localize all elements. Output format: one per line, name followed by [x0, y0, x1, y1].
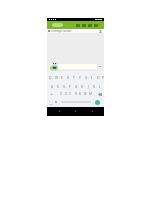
staticText: H — [81, 85, 84, 89]
staticText: J — [88, 85, 89, 89]
staticText: L — [99, 85, 101, 89]
staticText: D — [63, 85, 66, 89]
button[interactable]: Tab — [82, 24, 86, 27]
staticText: U — [85, 76, 88, 80]
staticText: S — [57, 85, 59, 89]
button[interactable]: Backspace — [97, 91, 103, 97]
button[interactable]: V — [73, 91, 78, 97]
button[interactable]: Tab — [76, 24, 80, 27]
staticText: X — [65, 92, 67, 96]
staticText: Y — [79, 76, 81, 80]
staticText: M — [89, 92, 92, 96]
button[interactable]: Title — [52, 23, 63, 27]
staticText: B — [79, 92, 82, 96]
button[interactable]: Shift — [48, 91, 54, 97]
button[interactable]: Recents — [88, 107, 97, 116]
button[interactable]: E — [59, 75, 65, 81]
button[interactable]: X — [63, 91, 68, 97]
button[interactable]: U — [83, 75, 89, 81]
staticText: F — [69, 85, 71, 89]
staticText: Z — [60, 92, 62, 96]
button[interactable]: Enter — [95, 100, 100, 105]
button[interactable]: D — [61, 84, 67, 90]
button[interactable]: F — [67, 84, 73, 90]
button[interactable]: Y — [77, 75, 83, 81]
staticText: W — [55, 76, 58, 80]
button[interactable]: M — [88, 91, 93, 97]
button[interactable]: O — [95, 75, 101, 81]
button[interactable]: W — [53, 75, 59, 81]
button[interactable]: I — [89, 75, 95, 81]
button[interactable]: Tab — [94, 24, 98, 27]
button[interactable]: Back — [55, 107, 64, 116]
button[interactable]: L — [97, 84, 103, 90]
button[interactable]: ?123 — [49, 99, 54, 105]
staticText: T — [73, 76, 75, 80]
staticText: R — [67, 76, 69, 80]
button[interactable]: K — [91, 84, 97, 90]
staticText: C — [69, 92, 72, 96]
button[interactable]: Tab — [88, 24, 92, 27]
button[interactable]: Q — [47, 75, 53, 81]
staticText: V — [75, 92, 77, 96]
button[interactable]: Home — [71, 107, 80, 116]
button[interactable]: Sticker — [50, 62, 59, 71]
staticText: O — [97, 76, 100, 80]
button[interactable]: N — [83, 91, 88, 97]
staticText: A — [51, 85, 54, 89]
staticText: ?123 — [49, 99, 54, 105]
staticText: message contact — [51, 29, 72, 33]
staticText: I — [91, 76, 93, 80]
button[interactable]: Z — [58, 91, 63, 97]
staticText: G — [75, 85, 78, 89]
staticText: N — [84, 92, 87, 96]
button[interactable]: B — [78, 91, 83, 97]
staticText: K — [93, 85, 95, 89]
button[interactable]: J — [85, 84, 91, 90]
button[interactable]: A — [49, 84, 55, 90]
button[interactable]: Contact — [98, 29, 102, 33]
button[interactable]: H — [79, 84, 85, 90]
button[interactable]: P — [101, 75, 104, 81]
button[interactable]: G — [73, 84, 79, 90]
button[interactable]: R — [65, 75, 71, 81]
button[interactable]: S — [55, 84, 61, 90]
staticText: E — [61, 76, 63, 80]
button[interactable]: T — [71, 75, 77, 81]
button[interactable]: message contact — [47, 29, 104, 33]
staticText: Q — [49, 76, 52, 80]
staticText: P — [102, 76, 104, 80]
button[interactable]: Send — [99, 65, 102, 68]
button[interactable]: C — [68, 91, 73, 97]
